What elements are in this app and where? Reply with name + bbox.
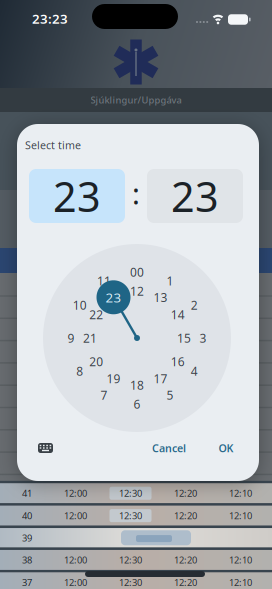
staticText: 6 [133,396,140,412]
staticText: 14 [171,306,185,322]
staticText: 12:10 [229,487,252,499]
staticText: 41 [22,487,32,499]
staticText: 9 [67,330,74,346]
staticText: 23:23 [32,10,68,27]
staticText: 21 [83,330,97,346]
staticText: 10 [73,297,87,313]
staticText: 38 [22,554,32,566]
staticText: 12:00 [64,509,87,522]
staticText: 20 [89,353,103,369]
staticText: 8 [76,363,83,379]
staticText: 23 [53,169,101,223]
staticText: 12 [130,283,144,299]
staticText: 39 [22,532,32,544]
staticText: 13 [153,289,167,305]
staticText: 1 [166,273,173,289]
staticText: 12:10 [229,576,252,589]
staticText: 7 [100,387,107,403]
staticText: 12:00 [64,487,87,499]
staticText: Cancel [152,441,186,455]
staticText: 12:30 [119,554,142,566]
staticText: 15 [177,330,191,346]
staticText: 40 [22,509,32,522]
staticText: 12:30 [119,509,142,522]
button[interactable]: OK [212,435,239,461]
staticText: 16 [171,353,185,369]
staticText: 4 [191,363,198,379]
staticText: 37 [22,576,32,589]
staticText: 12:20 [174,487,197,499]
staticText: 12:10 [229,554,252,566]
staticText: 12:20 [174,576,197,589]
button[interactable]: 23 [147,169,243,223]
staticText: 2 [191,297,198,313]
staticText: 22 [89,306,103,322]
button[interactable]: 23 [29,169,125,223]
staticText: 3 [199,330,206,346]
staticText: 5 [166,387,173,403]
staticText: 12:20 [174,509,197,522]
staticText: 18 [130,377,144,393]
staticText: 12:20 [174,554,197,566]
staticText: Select time [25,138,81,152]
staticText: 12:30 [119,487,142,499]
staticText: 11 [97,273,111,289]
staticText: 19 [106,371,120,387]
staticText: 12:00 [64,554,87,566]
staticText: 12:30 [119,576,142,589]
staticText: : [132,173,140,212]
button[interactable]: Switch to text input [33,438,57,458]
staticText: Sjúklingur/Uppgáva [90,94,181,106]
staticText: 12:10 [229,509,252,522]
staticText: 23 [105,288,121,306]
staticText: 00 [130,264,144,280]
staticText: 17 [153,371,167,387]
staticText: OK [218,441,233,455]
button[interactable]: Cancel [146,435,192,461]
staticText: 12:00 [64,576,87,589]
staticText: 23 [171,169,219,223]
